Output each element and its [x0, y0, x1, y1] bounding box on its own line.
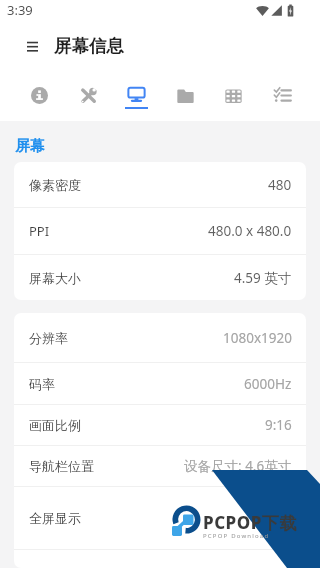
staticText: 像素密度	[29, 177, 81, 193]
staticText: 设备尺寸: 4.6英寸	[184, 457, 292, 475]
staticText: 屏幕大小	[29, 270, 81, 286]
staticText: PPI	[29, 222, 50, 240]
button[interactable]: 全屏显示	[14, 487, 306, 549]
staticText: 全屏显示	[29, 510, 81, 526]
staticText: 480.0 x 480.0	[208, 222, 292, 240]
staticText: PCPOP下载	[203, 511, 297, 534]
button[interactable]: PPI	[14, 208, 306, 254]
staticText: 导航栏位置	[29, 458, 94, 474]
button[interactable]	[14, 550, 306, 568]
button[interactable]: 像素密度	[14, 162, 306, 207]
button[interactable]: Menu	[18, 32, 46, 60]
button[interactable]: 屏幕大小	[14, 255, 306, 300]
staticText: PCPOP Download	[203, 532, 270, 540]
staticText: 3:39	[7, 1, 33, 19]
button[interactable]: 画面比例	[14, 405, 306, 445]
button[interactable]: Tools	[72, 71, 104, 121]
staticText: 6000Hz	[244, 375, 292, 393]
staticText: 分辨率	[29, 330, 68, 346]
button[interactable]: Display	[120, 71, 152, 121]
button[interactable]: 分辨率	[14, 313, 306, 362]
staticText: 码率	[29, 376, 55, 392]
button[interactable]: Files	[169, 71, 201, 121]
button[interactable]: Info	[23, 71, 55, 121]
staticText: 4.59 英寸	[234, 269, 292, 287]
button[interactable]: Tests	[266, 71, 298, 121]
staticText: 1080x1920	[223, 329, 292, 347]
staticText: 9:16	[265, 416, 292, 434]
staticText: 画面比例	[29, 417, 81, 433]
button[interactable]: 码率	[14, 363, 306, 404]
button[interactable]: 导航栏位置	[14, 446, 306, 486]
staticText: 屏幕	[15, 137, 45, 156]
staticText: 480	[268, 176, 292, 194]
button[interactable]: Apps	[217, 71, 249, 121]
staticText: 屏幕信息	[54, 35, 124, 57]
